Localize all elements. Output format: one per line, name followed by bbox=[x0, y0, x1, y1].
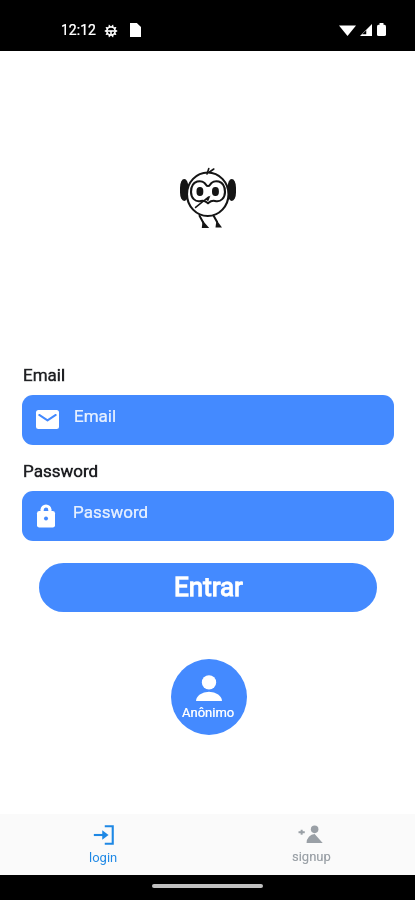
staticText: signup bbox=[292, 849, 331, 864]
button[interactable]: Password bbox=[22, 491, 394, 541]
other: Login bbox=[93, 825, 114, 845]
button[interactable]: Entrar bbox=[39, 563, 377, 612]
button[interactable]: Anônimo bbox=[171, 659, 247, 735]
staticText: Email bbox=[74, 406, 117, 426]
staticText: Password bbox=[23, 461, 99, 481]
staticText: Password bbox=[73, 502, 149, 522]
button[interactable]: Sign up bbox=[236, 814, 386, 875]
staticText: Email bbox=[23, 365, 66, 385]
staticText: Anônimo bbox=[182, 705, 235, 720]
staticText: Entrar bbox=[174, 572, 243, 602]
other: Sign up bbox=[298, 825, 324, 844]
staticText: login bbox=[89, 850, 118, 865]
button[interactable]: Email bbox=[22, 395, 394, 445]
button[interactable]: Login bbox=[28, 814, 178, 875]
staticText: 12:12 bbox=[61, 22, 96, 38]
